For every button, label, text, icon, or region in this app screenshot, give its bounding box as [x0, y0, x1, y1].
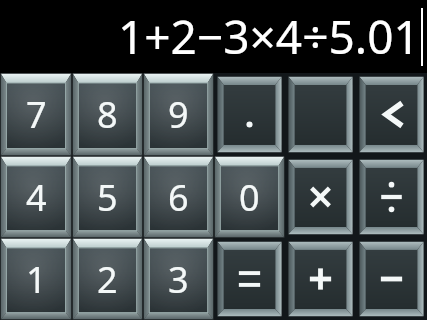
button[interactable]: Backspace [356, 73, 427, 156]
button[interactable]: 4 [0, 156, 72, 238]
button[interactable]: 0 [214, 156, 285, 238]
button[interactable]: Add [285, 238, 356, 320]
button[interactable]: 1+2−3×4÷5.01 [0, 0, 427, 73]
staticText: 0 [239, 173, 260, 222]
staticText: 6 [168, 173, 189, 222]
staticText: 8 [97, 90, 118, 139]
button[interactable]: Subtract [356, 238, 427, 320]
staticText: 1 [26, 255, 47, 304]
button[interactable]: Multiply [285, 156, 356, 238]
staticText: 2 [97, 255, 118, 304]
staticText: 9 [168, 90, 189, 139]
button[interactable]: 9 [143, 73, 214, 156]
button[interactable]: 1 [0, 238, 72, 320]
button[interactable]: 6 [143, 156, 214, 238]
button[interactable]: 7 [0, 73, 72, 156]
button[interactable]: Blank key [285, 73, 356, 156]
button[interactable]: 3 [143, 238, 214, 320]
staticText: 1+2−3×4÷5.01 [118, 5, 420, 68]
button[interactable]: Equals [214, 238, 285, 320]
staticText: 4 [26, 173, 47, 222]
button[interactable]: 2 [72, 238, 143, 320]
button[interactable]: Decimal point [214, 73, 285, 156]
staticText: 5 [97, 173, 118, 222]
staticText: 3 [168, 255, 189, 304]
staticText: 7 [26, 90, 47, 139]
button[interactable]: 8 [72, 73, 143, 156]
button[interactable]: 5 [72, 156, 143, 238]
button[interactable]: Divide [356, 156, 427, 238]
